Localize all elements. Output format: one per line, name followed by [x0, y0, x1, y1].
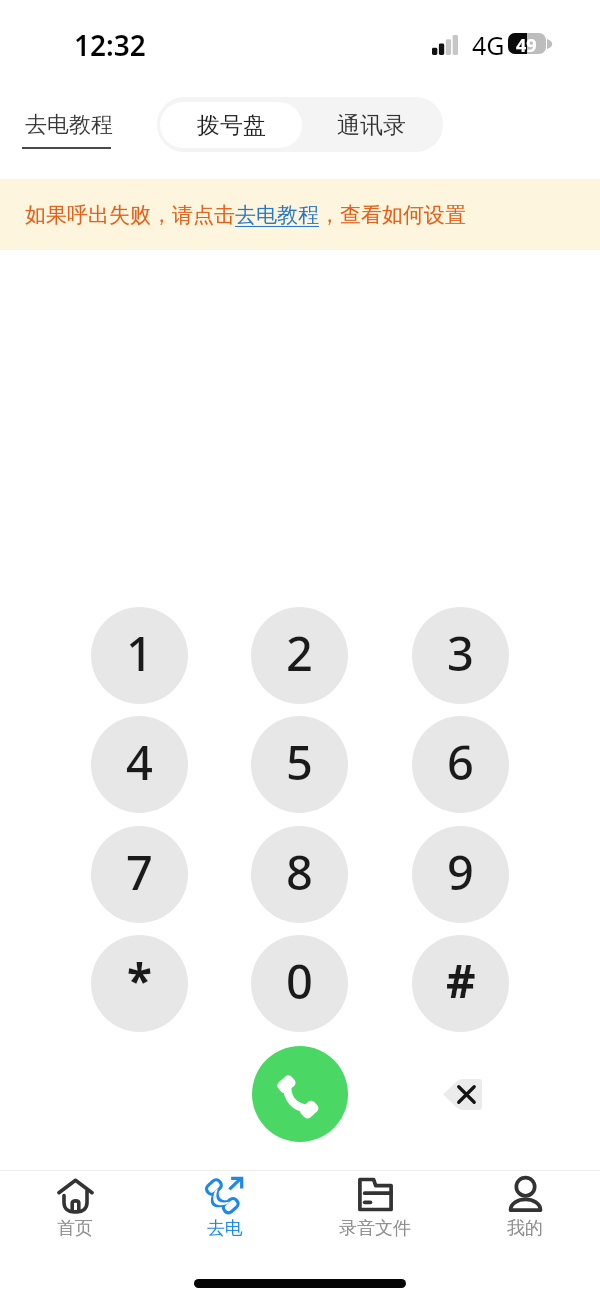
staticText: 2: [286, 621, 313, 685]
staticText: 去电教程: [235, 202, 319, 228]
button[interactable]: 6: [412, 716, 509, 813]
staticText: 4: [126, 730, 153, 794]
staticText: 3: [447, 621, 474, 685]
button[interactable]: 3: [412, 607, 509, 704]
staticText: 录音文件: [339, 1217, 411, 1240]
staticText: 首页: [57, 1217, 93, 1240]
button[interactable]: 0: [251, 935, 348, 1032]
staticText: 12:32: [74, 26, 146, 64]
staticText: 通讯录: [337, 111, 406, 140]
staticText: *: [127, 949, 152, 1012]
button[interactable]: 8: [251, 826, 348, 923]
staticText: 7: [126, 840, 153, 904]
staticText: 如果呼出失败，请点击: [25, 202, 235, 228]
button[interactable]: 录音文件: [300, 1171, 450, 1251]
button[interactable]: Delete: [430, 1063, 492, 1125]
button[interactable]: 1: [91, 607, 188, 704]
button[interactable]: 去电教程: [25, 111, 114, 149]
button[interactable]: 7: [91, 826, 188, 923]
button[interactable]: 通讯录: [305, 102, 437, 148]
staticText: 49: [516, 33, 537, 54]
staticText: 1: [126, 621, 153, 685]
staticText: 去电教程: [25, 111, 113, 139]
staticText: 去电: [207, 1217, 243, 1240]
button[interactable]: #: [412, 935, 509, 1032]
button[interactable]: 拨号盘: [160, 102, 302, 148]
staticText: 6: [447, 730, 474, 794]
button[interactable]: 去电教程: [235, 202, 319, 228]
button[interactable]: 9: [412, 826, 509, 923]
staticText: 9: [447, 840, 474, 904]
staticText: 拨号盘: [197, 111, 266, 140]
staticText: 4G: [472, 28, 505, 62]
button[interactable]: 5: [251, 716, 348, 813]
staticText: 0: [286, 949, 313, 1013]
button[interactable]: 首页: [0, 1171, 150, 1251]
staticText: 5: [286, 730, 313, 794]
staticText: #: [446, 949, 476, 1012]
button[interactable]: 4: [91, 716, 188, 813]
staticText: 8: [286, 840, 313, 904]
button[interactable]: 去电: [150, 1171, 300, 1251]
button[interactable]: *: [91, 935, 188, 1032]
staticText: 我的: [507, 1217, 543, 1240]
button[interactable]: Call: [252, 1046, 348, 1142]
button[interactable]: 2: [251, 607, 348, 704]
staticText: ，查看如何设置: [319, 202, 466, 228]
button[interactable]: 我的: [450, 1171, 600, 1251]
